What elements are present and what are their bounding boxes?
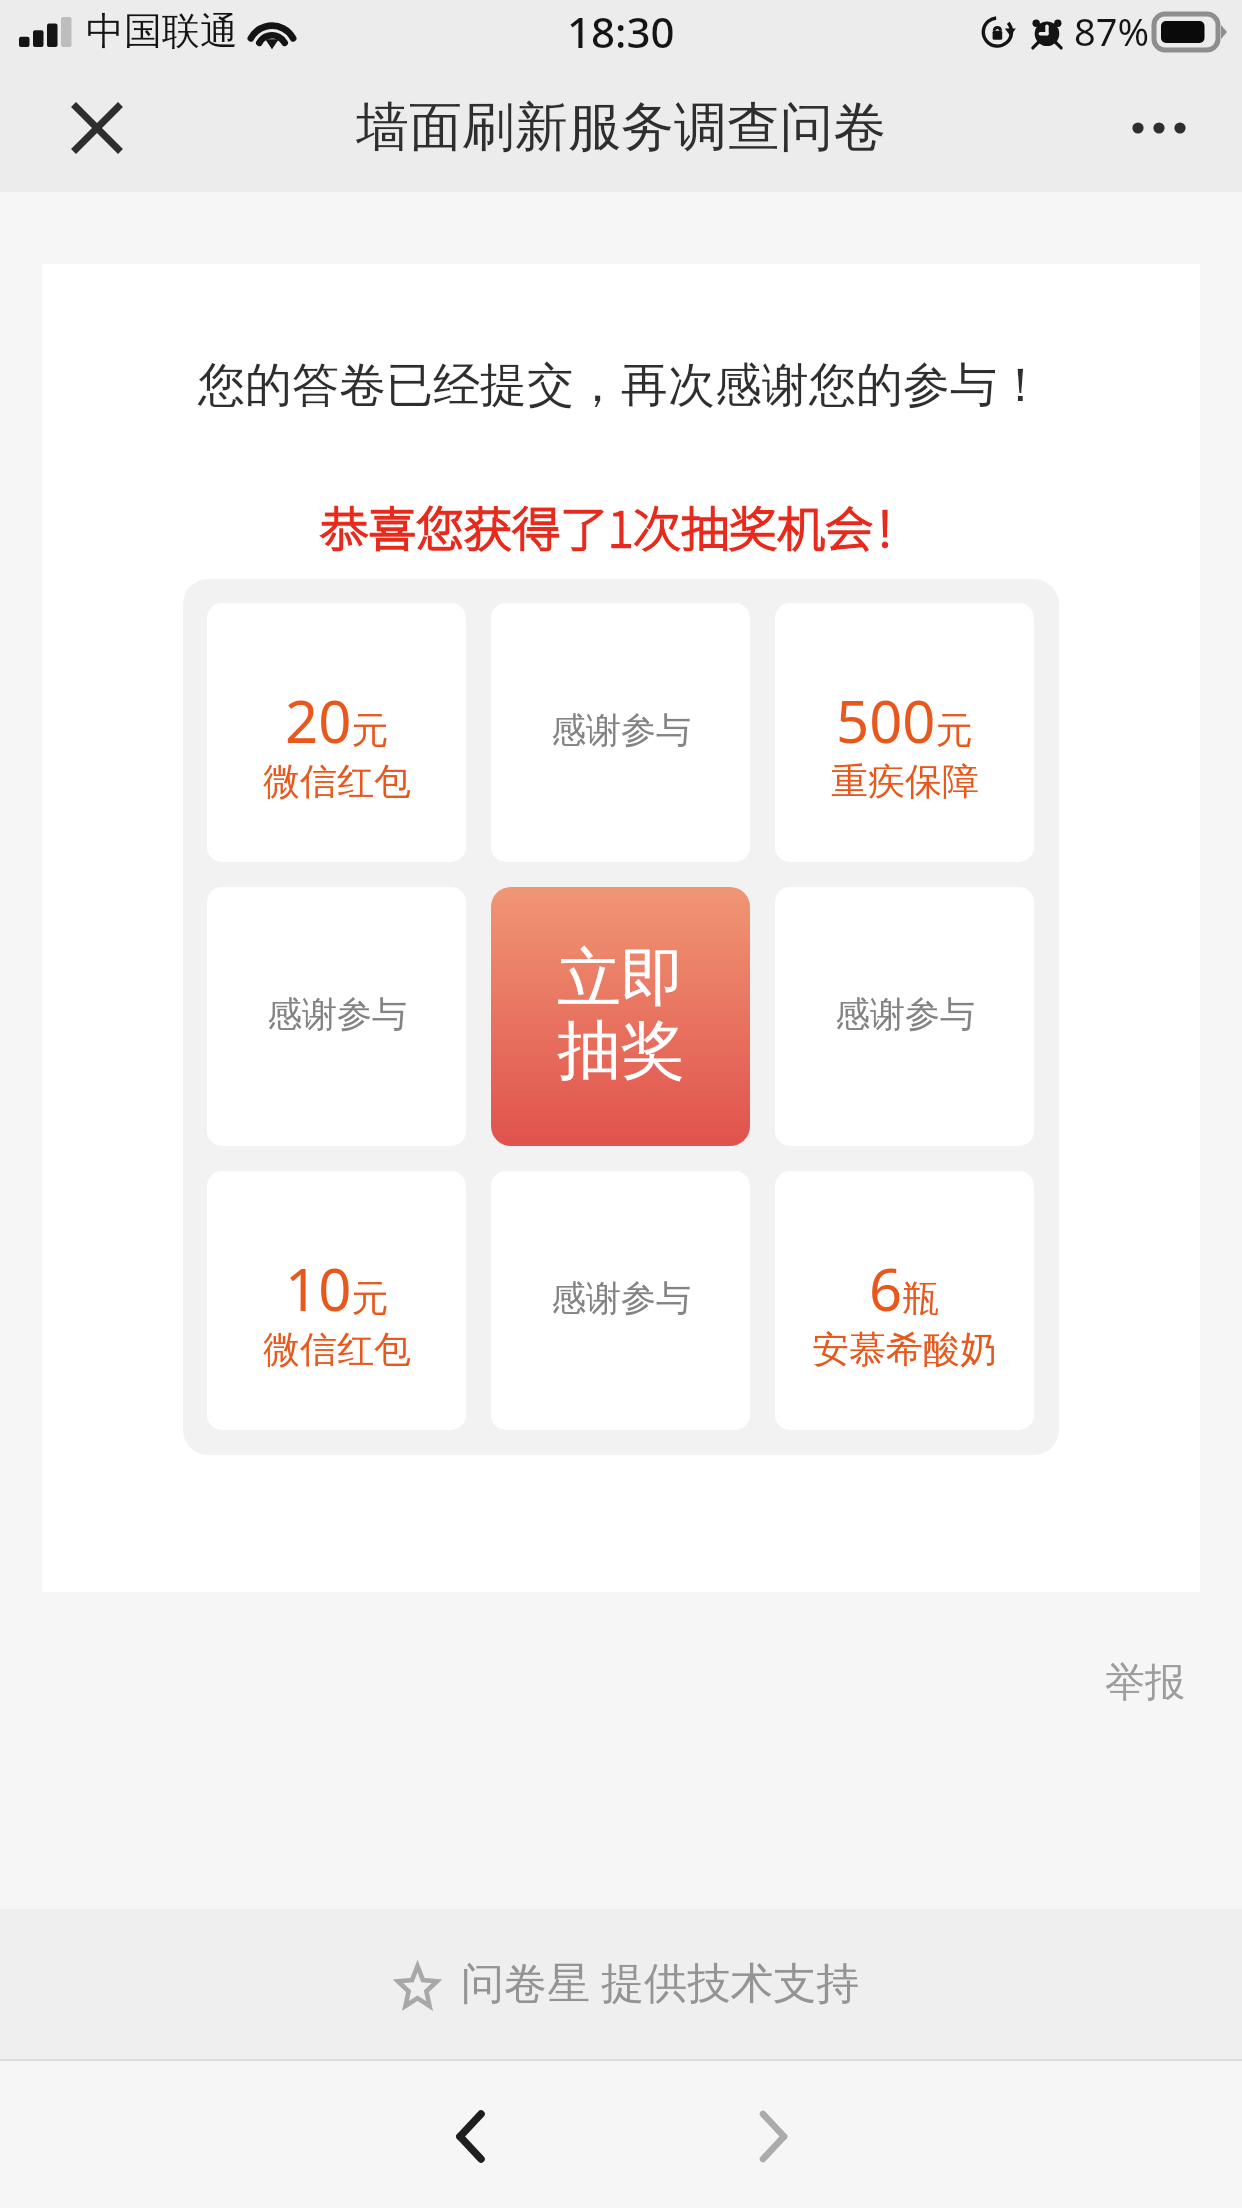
staticText: 10元 (285, 1249, 389, 1328)
staticText: 感谢参与 (835, 992, 975, 1036)
staticText: 感谢参与 (551, 708, 691, 752)
button[interactable]: 感谢参与 (491, 1171, 750, 1430)
staticText: 微信红包 (263, 758, 411, 805)
staticText: 问卷星 提供技术支持 (461, 1952, 860, 2011)
staticText: 20元 (285, 681, 389, 760)
staticText: 18:30 (567, 3, 675, 60)
staticText: 您的答卷已经提交，再次感谢您的参与！ (198, 356, 1044, 415)
button[interactable]: 20元 (207, 603, 466, 862)
staticText: 重疾保障 (831, 758, 979, 805)
button[interactable]: 500元 (775, 603, 1034, 862)
button[interactable]: 10元 (207, 1171, 466, 1430)
button[interactable]: Back (410, 2076, 530, 2196)
button[interactable]: 立即 抽奖 (491, 887, 750, 1146)
staticText: 恭喜您获得了1次抽奖机会！ (320, 491, 922, 561)
staticText: 恭喜您获得了1次抽奖机会！ (320, 491, 922, 561)
staticText: 感谢参与 (551, 1276, 691, 1320)
staticText: 墙面刷新服务调查问卷 (356, 94, 886, 161)
button[interactable]: 感谢参与 (207, 887, 466, 1146)
staticText: 6瓶 (869, 1249, 940, 1328)
staticText: 举报 (1105, 1657, 1185, 1707)
button[interactable]: More options (1114, 83, 1204, 173)
staticText: 立即 抽奖 (557, 938, 685, 1091)
staticText: 87% (1074, 5, 1150, 57)
staticText: 500元 (836, 681, 973, 760)
button[interactable]: Close (52, 83, 142, 173)
staticText: 微信红包 (263, 1326, 411, 1373)
staticText: 感谢参与 (267, 992, 407, 1036)
button[interactable]: 举报 (1097, 1649, 1193, 1715)
button[interactable]: 感谢参与 (775, 887, 1034, 1146)
staticText: 安慕希酸奶 (812, 1326, 997, 1373)
button[interactable]: 感谢参与 (491, 603, 750, 862)
staticText: 中国联通 (86, 7, 238, 55)
button[interactable]: 问卷星 提供技术支持 (0, 1909, 1242, 2059)
button[interactable]: Forward (713, 2076, 833, 2196)
button[interactable]: 6瓶 (775, 1171, 1034, 1430)
